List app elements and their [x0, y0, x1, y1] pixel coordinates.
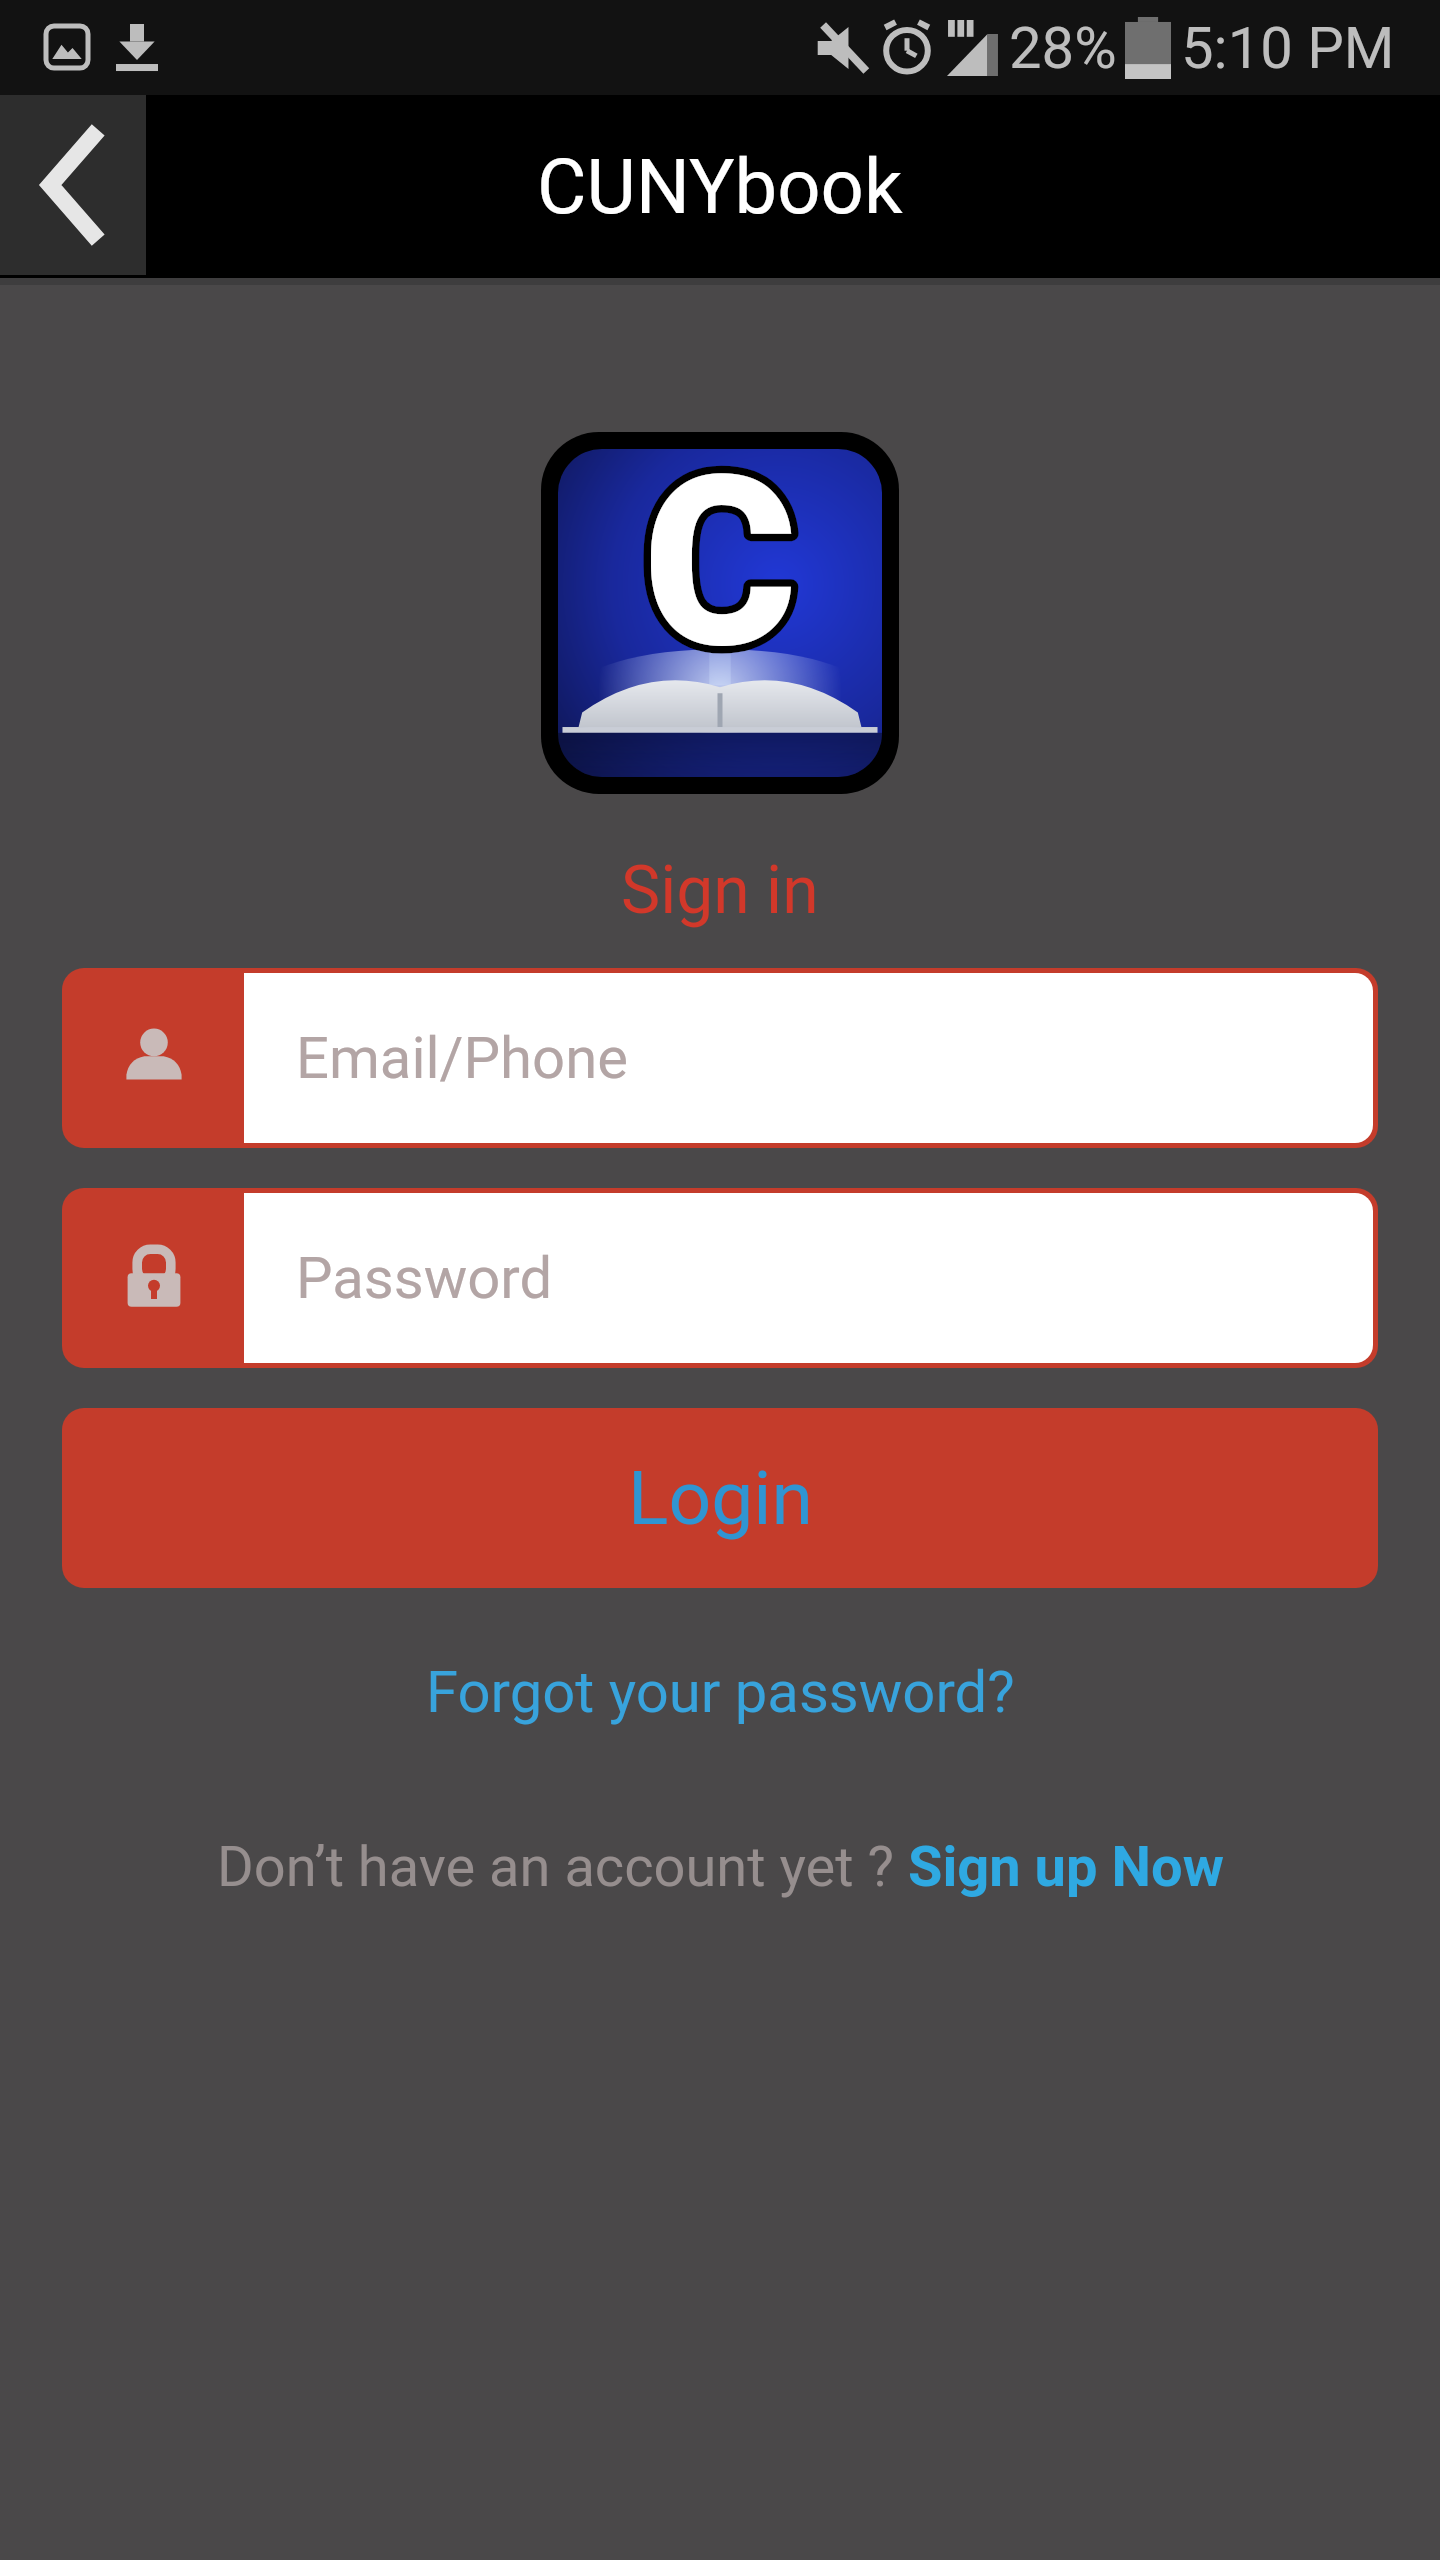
staticText: Sign up Now [908, 1834, 1224, 1900]
staticText: Forgot your password? [426, 1658, 1015, 1726]
staticText: Email/Phone [296, 1024, 628, 1092]
staticText: Login [628, 1454, 813, 1542]
button[interactable]: Forgot your password? [370, 1655, 1070, 1729]
staticText: 5:10 PM [1181, 14, 1395, 82]
staticText: C [643, 426, 798, 701]
button[interactable]: Password [62, 1188, 1378, 1368]
button[interactable]: Login [62, 1408, 1378, 1588]
staticText: Password [296, 1244, 553, 1312]
staticText: Don’t have an account yet ? [217, 1834, 908, 1900]
button[interactable]: Email/Phone [62, 968, 1378, 1148]
button[interactable] [0, 95, 146, 275]
staticText: Sign in [621, 852, 819, 928]
button[interactable]: Sign up Now [908, 1834, 1224, 1900]
staticText: C [643, 426, 798, 701]
staticText: CUNYbook [537, 142, 903, 231]
staticText: 28% [1009, 14, 1117, 82]
